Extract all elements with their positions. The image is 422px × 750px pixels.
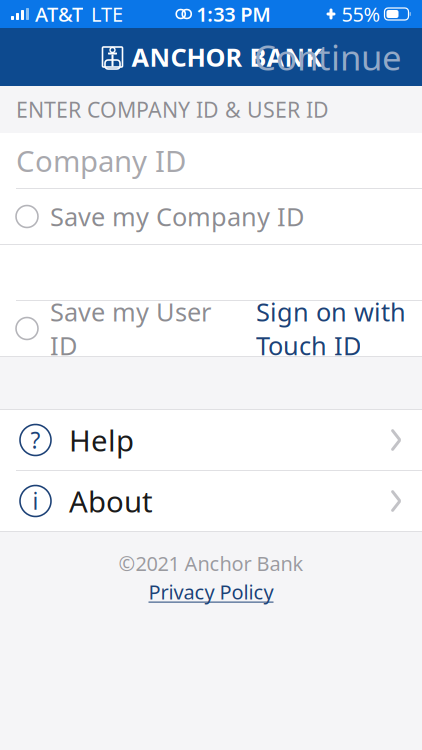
- staticText: Continue: [254, 34, 402, 80]
- staticText: Privacy Policy: [148, 579, 273, 605]
- staticText: AT&T: [35, 1, 83, 27]
- button[interactable]: Company ID: [0, 133, 422, 188]
- staticText: Help: [69, 420, 134, 459]
- staticText: i: [32, 486, 38, 516]
- staticText: ?: [30, 425, 40, 455]
- button[interactable]: i: [0, 471, 422, 531]
- staticText: Save my Company ID: [50, 200, 304, 233]
- staticText: Save my User ID: [50, 295, 211, 362]
- staticText: About: [69, 481, 153, 520]
- staticText: Company ID: [16, 141, 186, 180]
- button[interactable]: Continue: [240, 26, 416, 88]
- staticText: ANCHOR BANK: [131, 40, 322, 74]
- staticText: ENTER COMPANY ID & USER ID: [16, 95, 329, 124]
- button[interactable]: ?: [0, 410, 422, 470]
- button[interactable]: Save my User ID: [0, 301, 422, 356]
- staticText: 1:33 PM: [196, 1, 271, 27]
- staticText: Sign on with Touch ID: [256, 295, 406, 362]
- staticText: ©2021 Anchor Bank: [118, 550, 303, 577]
- staticText: LTE: [91, 1, 123, 27]
- button[interactable]: Privacy Policy: [148, 579, 273, 605]
- button[interactable]: Save my Company ID: [0, 189, 422, 244]
- staticText: 55%: [341, 1, 380, 27]
